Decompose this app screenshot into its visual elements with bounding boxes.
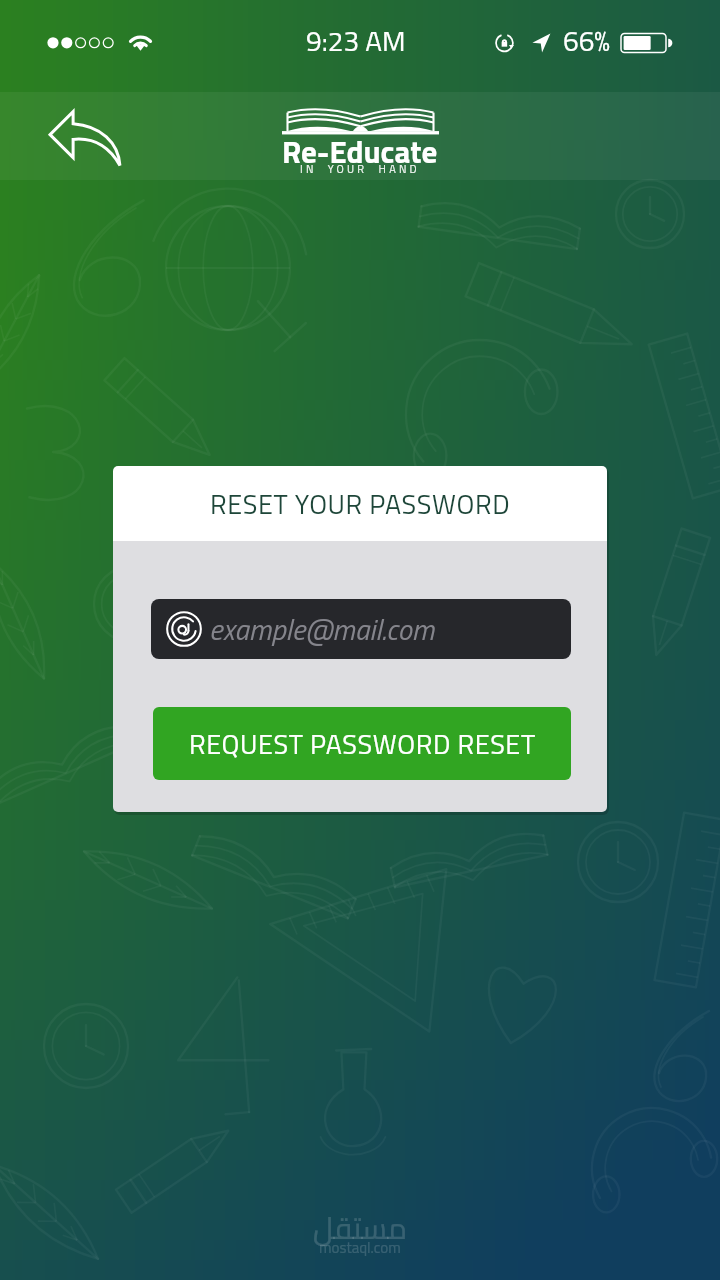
staticText: REQUEST PASSWORD RESET bbox=[189, 723, 536, 764]
button[interactable]: Back bbox=[49, 110, 121, 166]
staticText: 9:23 AM bbox=[306, 19, 406, 62]
staticText: مستقل bbox=[313, 1200, 408, 1256]
staticText: RESET YOUR PASSWORD bbox=[210, 483, 511, 524]
staticText: mostaql.com bbox=[319, 1236, 401, 1259]
staticText: Re-Educate bbox=[282, 128, 438, 175]
button[interactable]: example@mail.com bbox=[151, 599, 571, 659]
button[interactable]: REQUEST PASSWORD RESET bbox=[153, 707, 571, 780]
staticText: example@mail.com bbox=[209, 607, 435, 651]
staticText: IN YOUR HAND bbox=[300, 161, 420, 178]
staticText: 66% bbox=[563, 19, 611, 62]
